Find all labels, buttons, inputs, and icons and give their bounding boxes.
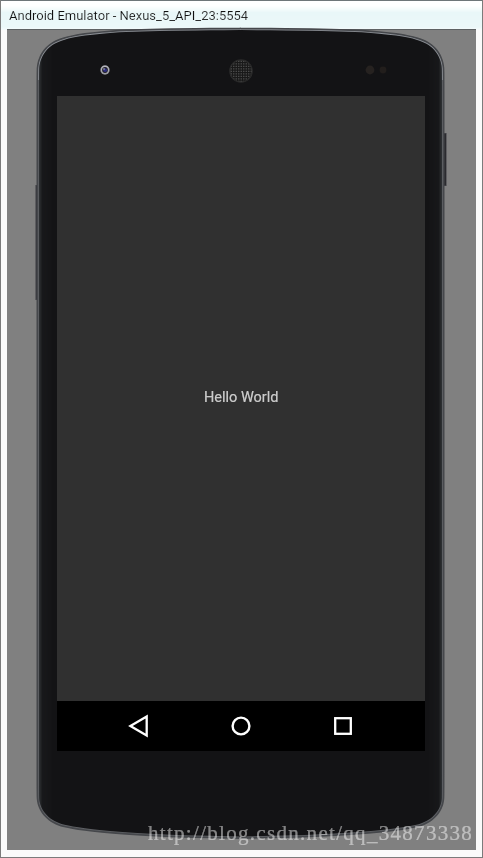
staticText: Android Emulator - Nexus_5_API_23:5554: [9, 8, 249, 23]
staticText: Hello World: [204, 389, 279, 406]
button[interactable]: Recent apps: [313, 701, 373, 751]
button[interactable]: Home: [211, 701, 271, 751]
button[interactable]: Back: [109, 701, 169, 751]
staticText: http://blog.csdn.net/qq_34873338: [148, 821, 474, 844]
